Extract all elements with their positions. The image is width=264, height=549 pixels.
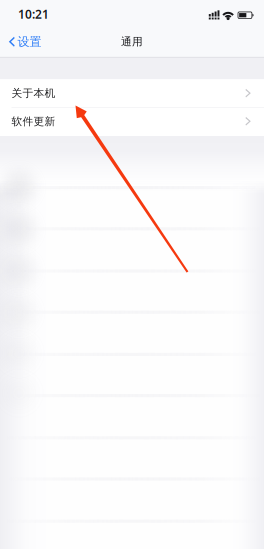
staticText: 关于本机 — [11, 87, 55, 100]
button[interactable]: 关于本机 — [0, 79, 264, 107]
button[interactable]: 设置 — [0, 26, 48, 57]
staticText: 软件更新 — [11, 115, 55, 128]
staticText: 通用 — [121, 35, 143, 48]
button[interactable]: 软件更新 — [0, 108, 264, 135]
staticText: 10:21 — [18, 6, 49, 22]
staticText: 设置 — [17, 34, 41, 49]
